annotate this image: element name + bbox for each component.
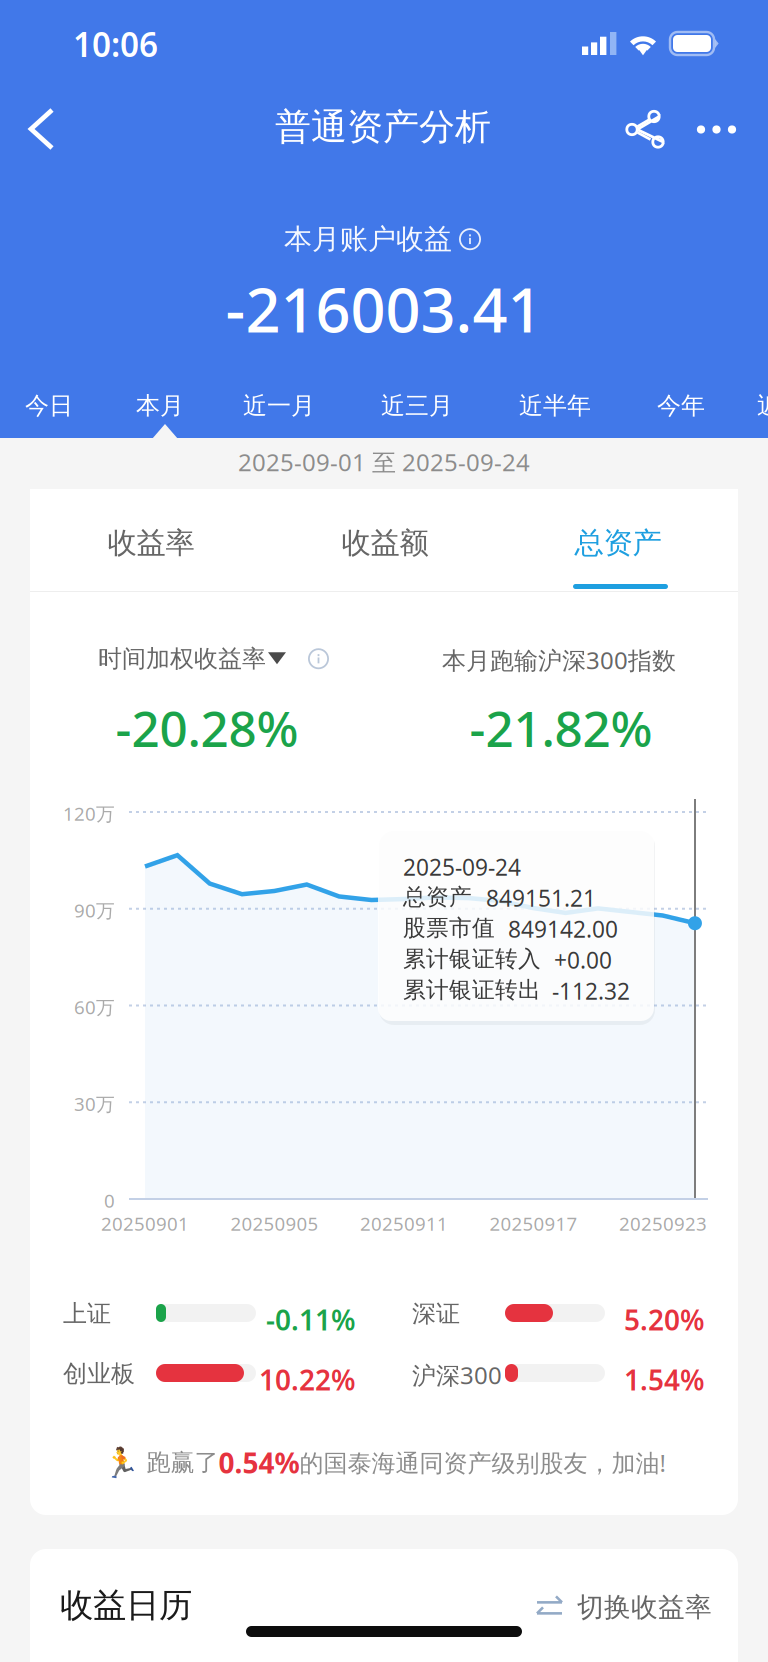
staticText: 1.54% (624, 1361, 705, 1398)
button[interactable]: 更多 (697, 125, 736, 134)
staticText: 10:06 (73, 22, 158, 66)
button[interactable]: 今日 (25, 383, 73, 428)
staticText: 收益额 (341, 525, 428, 561)
staticText: 90万 (74, 898, 115, 923)
staticText: -112.32 (552, 976, 630, 1006)
staticText: 近一月 (243, 391, 315, 420)
button[interactable]: 收益额 (340, 513, 430, 573)
staticText: 累计银证转入 (403, 945, 541, 973)
button[interactable]: 近一月 (243, 383, 315, 428)
staticText: 累计银证转出 (403, 976, 541, 1004)
staticText: 切换收益率 (577, 1591, 712, 1624)
button[interactable]: 近三月 (381, 383, 453, 428)
button[interactable]: 收益率 (106, 513, 196, 573)
staticText: -21.82% (469, 695, 652, 760)
staticText: 2025-09-01 至 2025-09-24 (238, 446, 530, 478)
staticText: -216003.41 (225, 268, 542, 349)
staticText: -20.28% (115, 695, 298, 760)
staticText: 20250905 (230, 1211, 318, 1236)
staticText: 普通资产分析 (275, 105, 491, 149)
staticText: 沪深300 (412, 1359, 502, 1391)
staticText: 849142.00 (508, 914, 618, 944)
staticText: 总资产 (574, 525, 661, 561)
staticText: 上证 (63, 1299, 111, 1328)
button[interactable]: 总资产 (573, 513, 663, 573)
button[interactable]: 近 (757, 383, 768, 428)
staticText: +0.00 (554, 945, 612, 975)
staticText: 今日 (25, 391, 73, 420)
staticText: 20250901 (101, 1211, 189, 1236)
staticText: 总资产 (403, 883, 472, 911)
staticText: 849151.21 (486, 883, 596, 913)
staticText: 近三月 (381, 391, 453, 420)
staticText: 10.22% (259, 1361, 356, 1398)
staticText: 🏃 (102, 1446, 139, 1479)
button[interactable]: 近半年 (519, 383, 591, 428)
staticText: 股票市值 (403, 914, 495, 942)
staticText: 深证 (412, 1299, 460, 1328)
button[interactable]: 切换收益率 (536, 1591, 721, 1624)
staticText: 时间加权收益率 (98, 644, 266, 673)
staticText: 120万 (63, 801, 115, 826)
staticText: 创业板 (63, 1359, 135, 1388)
staticText: 0 (104, 1188, 115, 1213)
staticText: 今年 (657, 391, 705, 420)
staticText: 30万 (74, 1091, 115, 1116)
staticText: 本月跑输沪深300指数 (442, 644, 676, 676)
button[interactable]: 今年 (657, 383, 705, 428)
staticText: -0.11% (266, 1301, 356, 1338)
staticText: 20250923 (619, 1211, 707, 1236)
staticText: 0.54% (218, 1444, 299, 1481)
staticText: 60万 (74, 994, 115, 1019)
button[interactable]: 本月 (136, 383, 184, 428)
staticText: 跑赢了 (146, 1448, 218, 1477)
staticText: 5.20% (624, 1301, 705, 1338)
staticText: 本月账户收益 (284, 222, 452, 256)
staticText: 20250911 (360, 1211, 448, 1236)
staticText: 2025-09-24 (403, 852, 521, 882)
staticText: 本月 (136, 391, 184, 420)
staticText: 20250917 (489, 1211, 577, 1236)
staticText: 近 (757, 391, 768, 420)
staticText: 近半年 (519, 391, 591, 420)
staticText: 的国泰海通同资产级别股友，加油! (299, 1447, 665, 1479)
staticText: 收益率 (107, 525, 194, 561)
button[interactable]: 分享 (626, 113, 660, 145)
staticText: 收益日历 (60, 1585, 192, 1626)
button[interactable]: 返回 (24, 104, 60, 154)
